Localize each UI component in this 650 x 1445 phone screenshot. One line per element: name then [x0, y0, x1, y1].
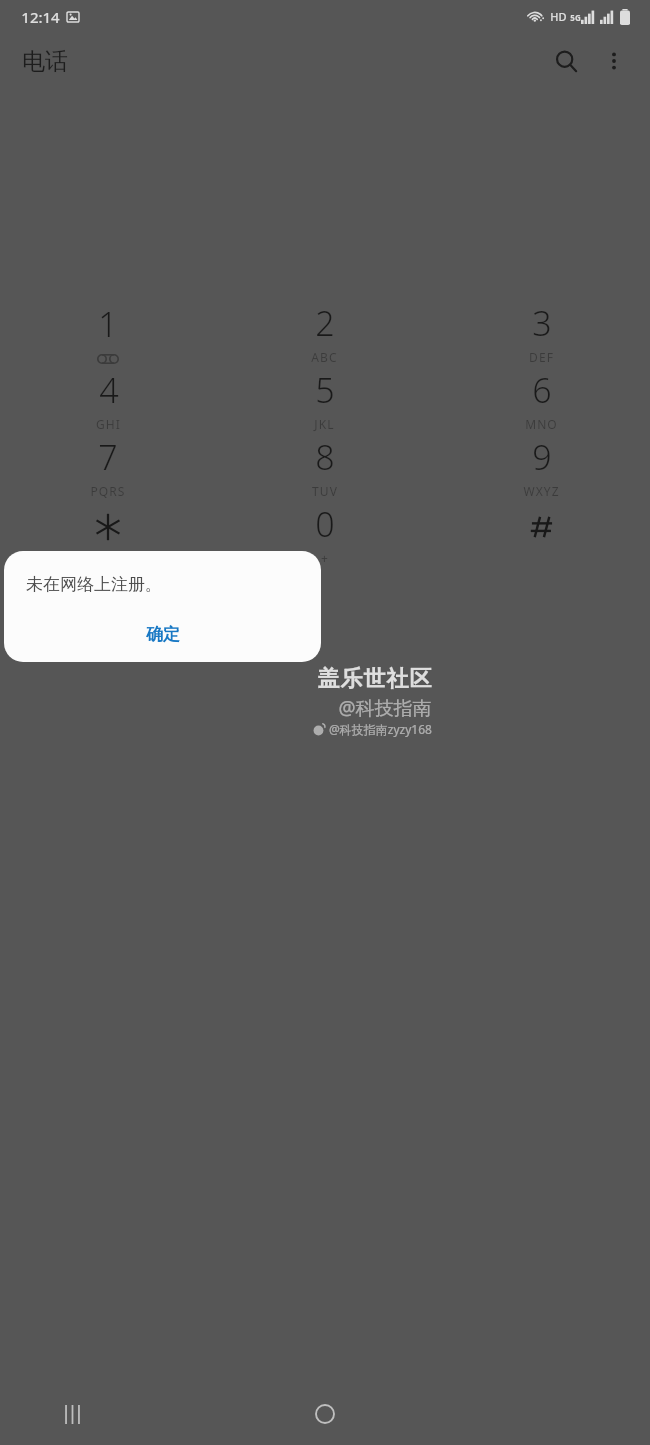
button[interactable]: 7 [0, 433, 216, 500]
staticText: @科技指南zyzy168 [329, 721, 432, 737]
staticText: + [321, 550, 329, 566]
button[interactable]: 6 [433, 366, 650, 433]
staticText: HD [550, 9, 567, 24]
button[interactable]: 2 [216, 299, 433, 366]
staticText: 盖乐世社区 [317, 665, 432, 693]
button[interactable]: 9 [433, 433, 650, 500]
button[interactable]: 8 [216, 433, 433, 500]
button[interactable]: Recent apps [48, 1390, 96, 1438]
staticText: @科技指南 [338, 695, 432, 721]
button[interactable]: 4 [0, 366, 216, 433]
staticText: PQRS [90, 483, 126, 499]
staticText: 2 [315, 300, 335, 346]
staticText: GHI [96, 416, 121, 432]
staticText: JKL [314, 416, 335, 432]
staticText: 12:14 [21, 7, 60, 27]
staticText: 9 [532, 434, 552, 480]
staticText: 5 [315, 367, 335, 413]
staticText: 电话 [22, 47, 68, 76]
button[interactable]: 5 [216, 366, 433, 433]
staticText: DEF [529, 349, 554, 365]
staticText: 确定 [146, 624, 180, 645]
staticText: 3 [532, 300, 552, 346]
staticText: 6 [532, 367, 552, 413]
button[interactable]: 3 [433, 299, 650, 366]
button[interactable]: 1 [0, 299, 216, 366]
button[interactable] [433, 500, 650, 567]
staticText: 7 [98, 434, 118, 480]
staticText: 未在网络上注册。 [26, 574, 162, 595]
button[interactable]: Search [542, 37, 590, 85]
staticText: MNO [525, 416, 558, 432]
button[interactable]: More options [590, 37, 638, 85]
button[interactable] [0, 500, 216, 567]
button[interactable]: Home [301, 1390, 349, 1438]
staticText: 1 [98, 301, 118, 347]
staticText: 8 [315, 434, 335, 480]
staticText: TUV [312, 483, 338, 499]
button[interactable]: 0 [216, 500, 433, 567]
button[interactable]: 确定 [116, 619, 210, 650]
staticText: 0 [315, 501, 335, 547]
staticText: 4 [99, 367, 119, 413]
staticText: ABC [311, 349, 338, 365]
staticText: WXYZ [523, 483, 560, 499]
staticText: 5G [570, 12, 581, 23]
